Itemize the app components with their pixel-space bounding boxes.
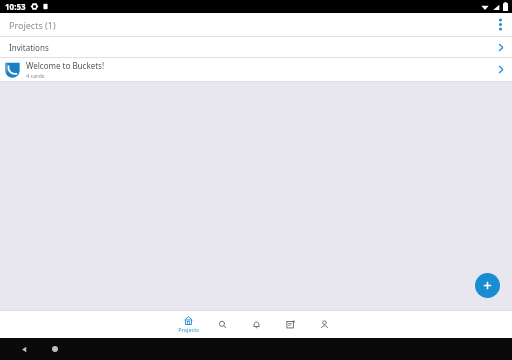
button[interactable]: Invitations	[0, 37, 512, 57]
staticText: 4 cards	[26, 72, 45, 79]
button[interactable]: Welcome to Buckets!	[0, 58, 512, 81]
button[interactable]: Profile	[307, 311, 341, 338]
button[interactable]: Add project	[475, 273, 500, 298]
button[interactable]: Assignments	[273, 311, 307, 338]
button[interactable]: Back	[17, 342, 31, 356]
button[interactable]: Projects	[171, 311, 205, 338]
staticText: 10:53	[5, 1, 26, 12]
staticText: Invitations	[9, 42, 49, 53]
staticText: Projects (1)	[9, 19, 56, 31]
button[interactable]: Home	[48, 342, 62, 356]
staticText: Projects	[178, 326, 199, 333]
staticText: Welcome to Buckets!	[26, 60, 105, 71]
button[interactable]: More options	[489, 13, 512, 36]
button[interactable]: Notifications	[239, 311, 273, 338]
button[interactable]: Search	[205, 311, 239, 338]
